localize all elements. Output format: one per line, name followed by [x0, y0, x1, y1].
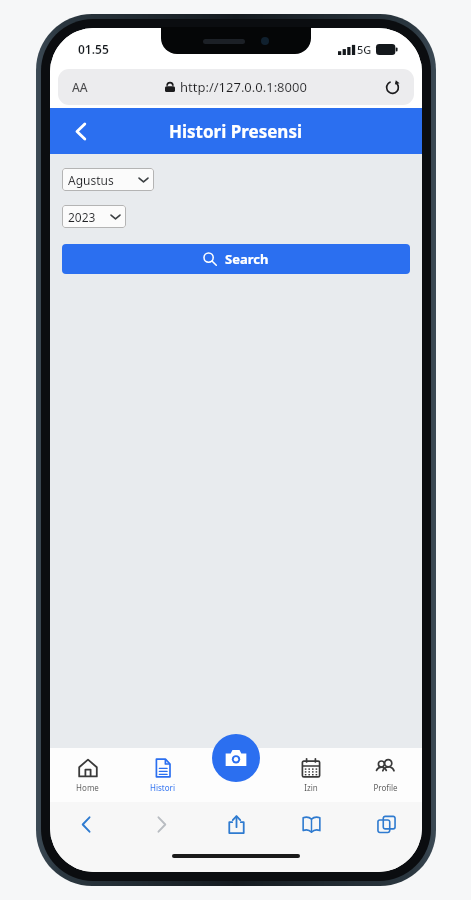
button[interactable]: Forward	[143, 806, 179, 842]
staticText: Search	[225, 250, 269, 268]
button[interactable]: Izin	[274, 748, 348, 802]
button[interactable]: Reload	[385, 80, 400, 95]
button[interactable]: Profile	[348, 748, 422, 802]
button[interactable]: Camera	[212, 734, 260, 782]
staticText: 2023	[68, 209, 111, 225]
staticText: 5G	[357, 42, 372, 57]
button[interactable]: Home	[50, 748, 125, 802]
staticText: Agustus	[68, 172, 139, 188]
staticText: Histori	[150, 782, 175, 793]
staticText: Histori Presensi	[169, 120, 303, 143]
button[interactable]: Share	[218, 806, 254, 842]
staticText: http://127.0.0.1:8000	[180, 78, 307, 96]
button[interactable]: AA	[58, 69, 414, 105]
button[interactable]: Bookmarks	[293, 806, 329, 842]
staticText: Profile	[373, 782, 398, 793]
staticText: AA	[72, 79, 88, 95]
button[interactable]: Tabs	[368, 806, 404, 842]
button[interactable]: Histori	[125, 748, 200, 802]
staticText: Home	[76, 782, 99, 793]
button[interactable]: Back	[68, 806, 104, 842]
staticText: 01.55	[78, 41, 109, 57]
staticText: Izin	[304, 782, 318, 793]
button[interactable]: Back	[64, 114, 98, 148]
button[interactable]: Agustus	[62, 168, 154, 191]
button[interactable]: 2023	[62, 205, 126, 228]
button[interactable]: Search	[62, 244, 410, 274]
